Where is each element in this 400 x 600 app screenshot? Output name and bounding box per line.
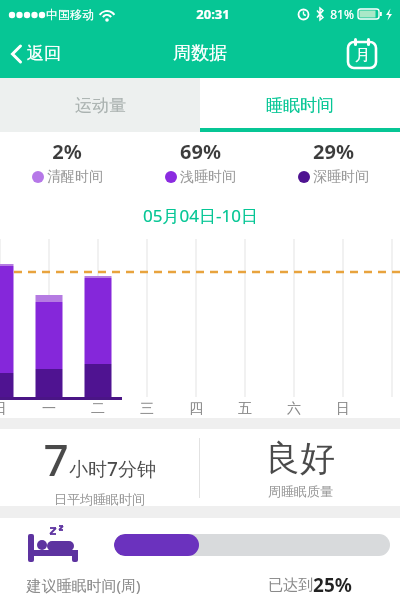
staticText: 小时7分钟 — [69, 456, 156, 482]
staticText: 运动量 — [75, 95, 126, 116]
button[interactable]: 返回 — [10, 43, 61, 64]
staticText: 四 — [186, 400, 206, 418]
staticText: 周数据 — [173, 42, 227, 65]
staticText: 已达到 — [268, 576, 313, 595]
staticText: 六 — [284, 400, 304, 418]
staticText: 69% — [180, 138, 221, 165]
staticText: 深睡时间 — [313, 168, 369, 186]
staticText: 81% — [330, 6, 354, 22]
staticText: 睡眠时间 — [266, 95, 334, 116]
staticText: 25% — [313, 572, 352, 598]
staticText: 7 — [43, 429, 69, 489]
button[interactable]: 良好 — [200, 429, 400, 506]
staticText: 清醒时间 — [47, 168, 103, 186]
staticText: 月 — [355, 46, 370, 65]
button[interactable]: 7 — [0, 429, 199, 506]
staticText: 日 — [333, 400, 353, 418]
staticText: 返回 — [27, 43, 61, 64]
staticText: 良好 — [265, 436, 335, 480]
staticText: 2% — [52, 138, 82, 165]
staticText: 建议睡眠时间(周) — [26, 575, 141, 595]
staticText: 浅睡时间 — [180, 168, 236, 186]
staticText: 一 — [39, 400, 59, 418]
staticText: 20:31 — [196, 5, 230, 23]
button[interactable]: 运动量 — [0, 78, 200, 132]
staticText: 29% — [313, 138, 354, 165]
staticText: 05月04日-10日 — [143, 204, 258, 227]
staticText: 中国移动 — [46, 7, 94, 22]
staticText: 周睡眠质量 — [268, 483, 333, 499]
staticText: 日 — [0, 400, 10, 418]
button[interactable]: 睡眠时间 — [200, 78, 400, 132]
staticText: 日平均睡眠时间 — [54, 491, 145, 506]
staticText: 五 — [235, 400, 255, 418]
staticText: 二 — [88, 400, 108, 418]
button[interactable]: 月 — [346, 37, 378, 69]
staticText: 三 — [137, 400, 157, 418]
